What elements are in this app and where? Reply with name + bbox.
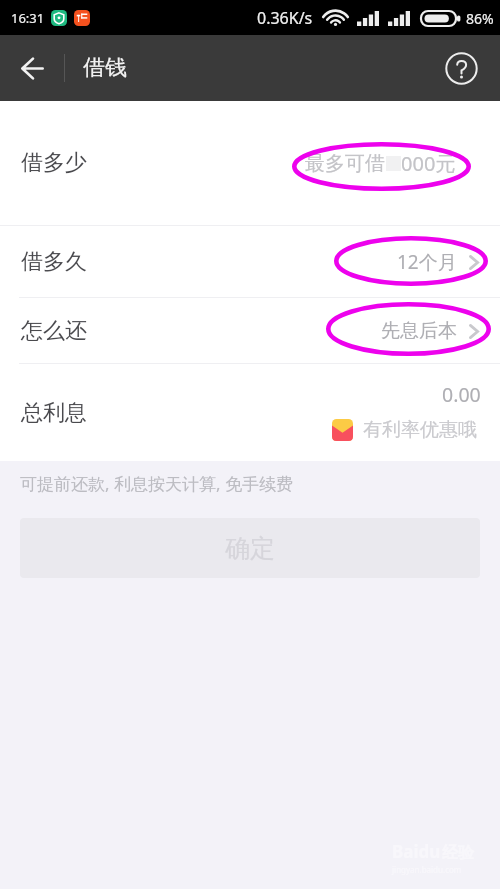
staticText: 可提前还款, 利息按天计算, 免手续费 bbox=[20, 472, 293, 495]
button[interactable]: Back bbox=[0, 35, 64, 101]
button[interactable]: 怎么还 bbox=[0, 298, 500, 363]
staticText: 确定 bbox=[225, 533, 275, 564]
staticText: 0.00 bbox=[442, 381, 481, 408]
staticText: 借多久 bbox=[21, 248, 87, 276]
staticText: 怎么还 bbox=[21, 317, 87, 345]
staticText: 总利息 bbox=[21, 399, 87, 427]
staticText: 86% bbox=[466, 9, 494, 28]
staticText: 先息后本 bbox=[381, 319, 457, 343]
staticText: 000元 bbox=[401, 150, 456, 177]
button[interactable]: Help bbox=[444, 51, 478, 85]
staticText: 12个月 bbox=[397, 249, 457, 275]
staticText: 16:31 bbox=[11, 9, 45, 27]
staticText: 0.36K/s bbox=[257, 7, 313, 29]
staticText: 借钱 bbox=[83, 54, 127, 82]
staticText: 最多可借 bbox=[305, 151, 385, 176]
button[interactable]: 借多久 bbox=[0, 226, 500, 297]
staticText: 借多少 bbox=[21, 149, 87, 177]
staticText: 有利率优惠哦 bbox=[363, 418, 477, 442]
button[interactable]: 借多少 bbox=[0, 101, 500, 225]
